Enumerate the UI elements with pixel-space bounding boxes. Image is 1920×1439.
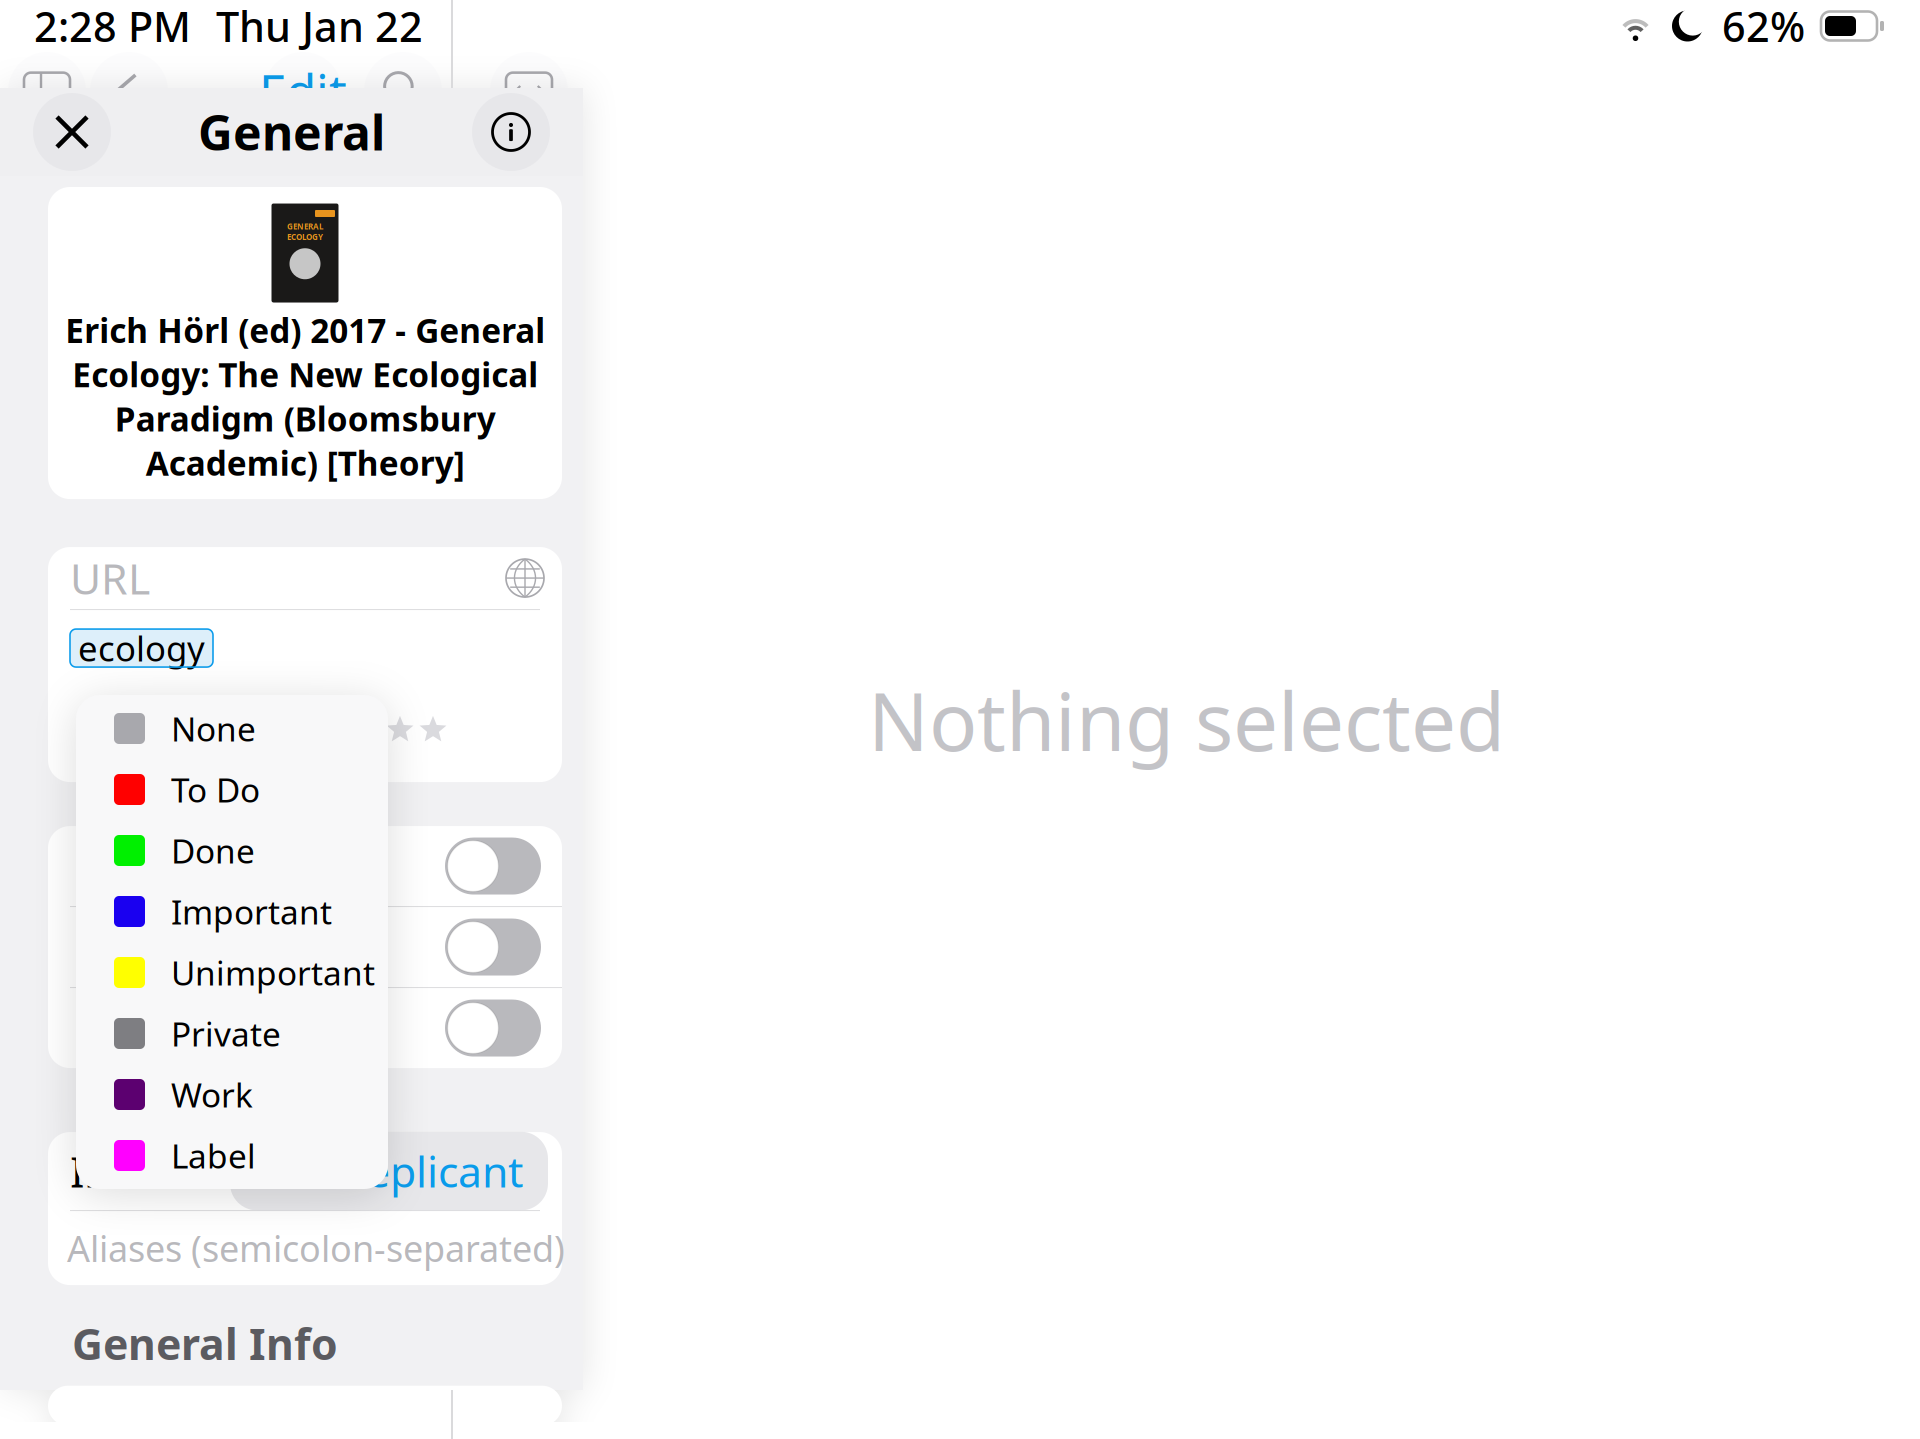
staticText: Done: [171, 828, 255, 873]
button[interactable]: Private: [76, 1003, 388, 1064]
staticText: Important: [171, 889, 332, 934]
button[interactable]: Back: [88, 52, 170, 130]
staticText: 62%: [1722, 0, 1805, 53]
staticText: 2:28 PM: [34, 0, 191, 53]
staticText: GENERAL ECOLOGY: [287, 221, 323, 242]
button[interactable]: Work: [76, 1064, 388, 1125]
button[interactable]: Adjust width: [488, 52, 570, 130]
button[interactable]: [48, 907, 562, 987]
button[interactable]: Close: [33, 93, 111, 171]
button[interactable]: Done: [76, 820, 388, 881]
staticText: In: [70, 1143, 110, 1199]
staticText: General: [198, 100, 385, 164]
staticText: To Do: [171, 767, 260, 812]
button[interactable]: Edit: [244, 52, 362, 130]
staticText: URL: [70, 550, 150, 606]
staticText: General Info: [72, 1315, 338, 1372]
button[interactable]: Unimportant: [76, 942, 388, 1003]
button[interactable]: One replicant: [230, 1132, 548, 1210]
staticText: Label: [171, 1133, 256, 1178]
staticText: Aliases (semicolon-separated): [67, 1224, 565, 1272]
button[interactable]: Important: [76, 881, 388, 942]
button[interactable]: [48, 826, 562, 906]
button[interactable]: Label: [76, 1125, 388, 1186]
button[interactable]: Show sidebar: [6, 52, 88, 130]
staticText: Erich Hörl (ed) 2017 - General Ecology: …: [65, 308, 545, 485]
staticText: Private: [171, 1011, 281, 1056]
staticText: None: [171, 706, 256, 751]
button[interactable]: Search: [362, 52, 444, 130]
button[interactable]: To Do: [76, 759, 388, 820]
staticText: Work: [171, 1072, 253, 1117]
staticText: One replicant: [255, 1143, 523, 1199]
staticText: Nothing selected: [868, 667, 1505, 773]
staticText: Thu Jan 22: [216, 0, 423, 53]
staticText: Edit: [259, 58, 347, 124]
staticText: Unimportant: [171, 950, 375, 995]
button[interactable]: [48, 988, 562, 1068]
staticText: ecology: [78, 625, 205, 671]
button[interactable]: Info: [472, 93, 550, 171]
button[interactable]: None: [76, 698, 388, 759]
